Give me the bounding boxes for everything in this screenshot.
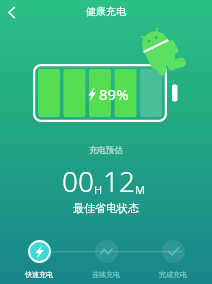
- staticText: 最佳省电状态: [73, 201, 139, 215]
- staticText: 00: [62, 162, 94, 200]
- staticText: 健康充电: [86, 5, 126, 18]
- staticText: M: [135, 182, 145, 197]
- button[interactable]: Back: [0, 1, 22, 23]
- staticText: 充电预估: [89, 145, 123, 156]
- staticText: 完成充电: [159, 270, 187, 279]
- staticText: 12: [103, 162, 135, 200]
- button[interactable]: 快速充电: [9, 240, 69, 279]
- staticText: 89%: [99, 84, 129, 104]
- button[interactable]: 连续充电: [76, 240, 136, 279]
- staticText: H: [94, 182, 103, 197]
- staticText: 连续充电: [92, 270, 120, 279]
- staticText: 快速充电: [25, 270, 53, 279]
- button[interactable]: 完成充电: [143, 240, 203, 279]
